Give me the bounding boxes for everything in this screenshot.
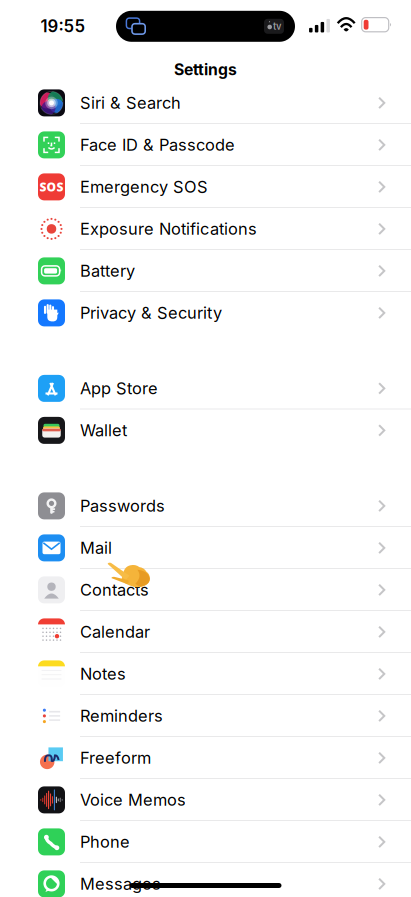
button[interactable]: Calendar (0, 611, 411, 653)
button[interactable]: Notes (0, 653, 411, 695)
staticText: Mail (80, 538, 112, 558)
staticText: 19:55 (40, 16, 85, 36)
staticText: SOS (39, 179, 63, 195)
staticText: Phone (80, 832, 130, 852)
staticText: Voice Memos (80, 790, 186, 810)
staticText: Privacy & Security (80, 303, 222, 323)
staticText: App Store (80, 378, 158, 398)
staticText: Passwords (80, 496, 165, 516)
button[interactable]: Face ID & Passcode (0, 124, 411, 166)
button[interactable]: App Store (0, 367, 411, 409)
button[interactable]: Battery (0, 250, 411, 292)
button[interactable]: Messages (0, 863, 411, 897)
staticText: tv (273, 21, 281, 32)
staticText: Emergency SOS (80, 177, 208, 197)
button[interactable]: Siri & Search (0, 82, 411, 124)
staticText: Notes (80, 664, 126, 684)
button[interactable]: Contacts (0, 569, 411, 611)
staticText: Settings (174, 60, 237, 79)
staticText: Face ID & Passcode (80, 135, 235, 155)
button[interactable]: Voice Memos (0, 779, 411, 821)
button[interactable]: Passwords (0, 485, 411, 527)
staticText: Contacts (80, 580, 149, 600)
staticText: Wallet (80, 420, 127, 440)
button[interactable]: SOS (0, 166, 411, 208)
staticText: Siri & Search (80, 93, 181, 113)
button[interactable]: Freeform (0, 737, 411, 779)
button[interactable]: Wallet (0, 409, 411, 451)
staticText: Calendar (80, 622, 150, 642)
button[interactable]: Phone (0, 821, 411, 863)
button[interactable]: Privacy & Security (0, 292, 411, 334)
button[interactable]: Exposure Notifications (0, 208, 411, 250)
staticText: Exposure Notifications (80, 219, 257, 239)
button[interactable]: Reminders (0, 695, 411, 737)
staticText: Reminders (80, 706, 163, 726)
staticText: Battery (80, 261, 135, 281)
staticText: Freeform (80, 748, 151, 768)
button[interactable]: Mail (0, 527, 411, 569)
staticText: Messages (80, 874, 161, 894)
